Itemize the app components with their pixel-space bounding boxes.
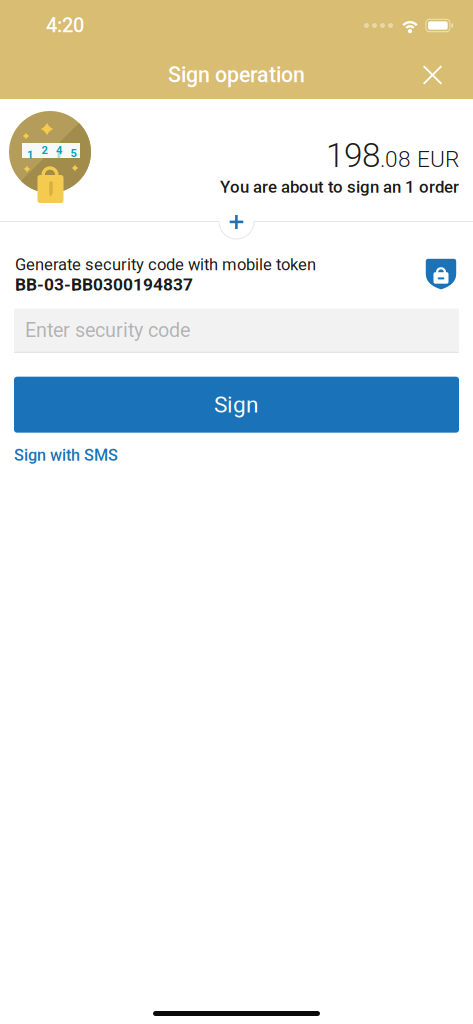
button[interactable]: Sign with SMS [14, 440, 118, 471]
staticText: BB-03-BB0300194837 [15, 274, 193, 295]
staticText: Generate security code with mobile token [15, 255, 316, 274]
staticText: You are about to sign an 1 order [220, 177, 459, 197]
staticText: Sign with SMS [14, 446, 118, 465]
staticText: 198 [326, 136, 380, 175]
staticText: 4 [56, 143, 62, 157]
staticText: Enter security code [25, 319, 190, 342]
button[interactable]: Show details [221, 207, 251, 237]
staticText: .08 EUR [380, 146, 459, 172]
staticText: 5 [70, 146, 76, 160]
staticText: 4:20 [46, 14, 84, 37]
staticText: 1 [27, 148, 33, 161]
staticText: Sign operation [168, 62, 305, 87]
staticText: 2 [41, 143, 47, 157]
button[interactable]: Sign [14, 377, 459, 433]
staticText: Sign [214, 391, 259, 418]
button[interactable]: Close [409, 53, 473, 96]
